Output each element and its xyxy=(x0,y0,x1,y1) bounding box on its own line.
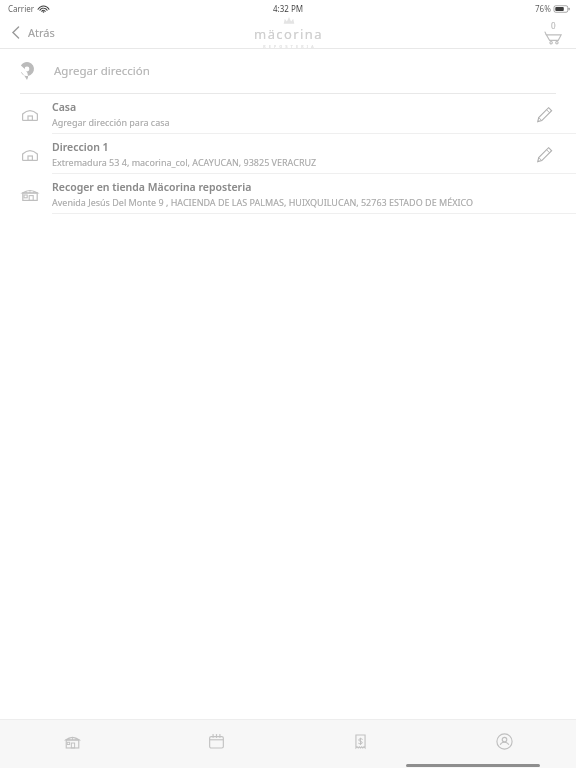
button[interactable]: Atrás xyxy=(0,16,67,48)
staticText: Agregar dirección xyxy=(54,63,150,79)
staticText: mäcorina xyxy=(254,25,323,43)
staticText: Agregar dirección para casa xyxy=(52,116,170,128)
staticText: Atrás xyxy=(28,25,55,40)
staticText: Direccion 1 xyxy=(52,140,109,154)
button[interactable]: Casa xyxy=(0,94,576,133)
staticText: R E P O S T E R I A xyxy=(263,44,315,48)
button[interactable]: Perfil xyxy=(432,720,576,762)
staticText: 0 xyxy=(551,20,556,31)
button[interactable]: Direccion 1 xyxy=(0,134,576,173)
staticText: 4:32 PM xyxy=(273,3,304,14)
button[interactable]: Tienda xyxy=(0,720,144,762)
staticText: Extremadura 53 4, macorina_col, ACAYUCAN… xyxy=(52,156,317,168)
button[interactable]: Pagos xyxy=(288,720,432,762)
staticText: Recoger en tienda Mäcorina reposteria xyxy=(52,180,252,194)
button[interactable]: Agregar dirección xyxy=(0,49,576,93)
button[interactable]: Editar dirección xyxy=(530,100,558,128)
button[interactable]: Editar dirección xyxy=(530,140,558,168)
staticText: Carrier xyxy=(8,3,35,14)
button[interactable]: Carrito de compras xyxy=(541,16,566,48)
staticText: Casa xyxy=(52,100,77,114)
button[interactable]: Recoger en tienda Mäcorina reposteria xyxy=(0,174,576,213)
staticText: 76% xyxy=(535,3,551,14)
button[interactable]: Pedidos xyxy=(144,720,288,762)
staticText: Avenida Jesús Del Monte 9 , HACIENDA DE … xyxy=(52,196,474,208)
